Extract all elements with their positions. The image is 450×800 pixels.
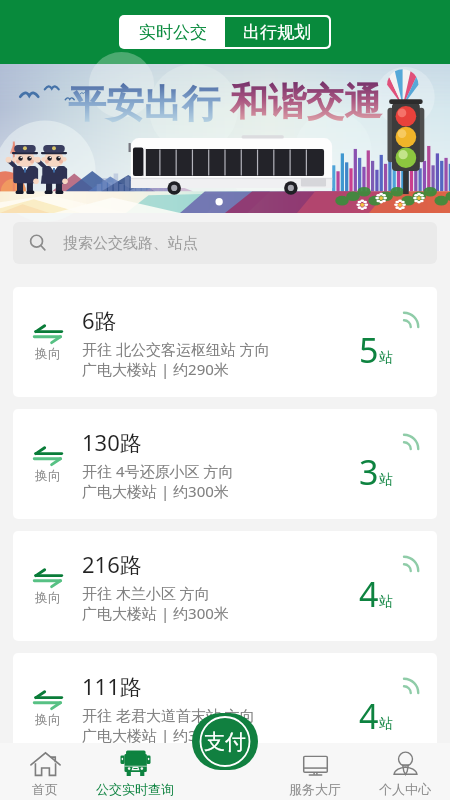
staticText: 换向: [35, 345, 61, 361]
staticText: 广电大楼站 | 约300米: [82, 603, 229, 623]
staticText: 111路: [82, 671, 142, 701]
button[interactable]: 换向: [13, 531, 437, 641]
staticText: 216路: [82, 549, 142, 579]
staticText: 平安出行: [68, 76, 230, 128]
staticText: 换向: [35, 589, 61, 605]
button[interactable]: 实时公交: [121, 17, 225, 47]
staticText: 站: [379, 349, 393, 367]
staticText: 搜索公交线路、站点: [63, 234, 198, 253]
staticText: 首页: [32, 781, 58, 797]
staticText: 开往 4号还原小区 方向: [82, 461, 234, 481]
staticText: 6路: [82, 305, 117, 335]
staticText: 广电大楼站 | 约290米: [82, 359, 229, 379]
button[interactable]: 支付: [192, 713, 258, 770]
staticText: 和谐交通: [230, 78, 382, 126]
staticText: 换向: [35, 711, 61, 727]
staticText: 130路: [82, 427, 142, 457]
staticText: 3: [359, 449, 379, 495]
button[interactable]: 搜索公交线路、站点: [13, 222, 437, 264]
button[interactable]: 个人中心: [360, 743, 450, 800]
staticText: 4: [359, 693, 379, 739]
staticText: 实时公交: [139, 22, 207, 43]
button[interactable]: 服务大厅: [270, 743, 360, 800]
button[interactable]: 公交实时查询: [90, 743, 180, 800]
staticText: 开往 北公交客运枢纽站 方向: [82, 339, 270, 359]
staticText: 开往 老君大道首末站 方向: [82, 705, 255, 725]
button[interactable]: 出行规划: [225, 17, 329, 47]
staticText: 出行规划: [243, 22, 311, 43]
staticText: 支付: [204, 729, 246, 755]
staticText: 公交实时查询: [96, 781, 174, 797]
staticText: 个人中心: [379, 781, 431, 797]
staticText: 广电大楼站 | 约300米: [82, 725, 229, 745]
staticText: 服务大厅: [289, 781, 341, 797]
button[interactable]: 换向: [13, 409, 437, 519]
button[interactable]: 首页: [0, 743, 90, 800]
staticText: 5: [359, 327, 379, 373]
staticText: 4: [359, 571, 379, 617]
staticText: 广电大楼站 | 约300米: [82, 481, 229, 501]
staticText: 站: [379, 593, 393, 611]
staticText: 站: [379, 471, 393, 489]
staticText: 开往 木兰小区 方向: [82, 583, 210, 603]
staticText: 站: [379, 715, 393, 733]
button[interactable]: 换向: [13, 287, 437, 397]
staticText: 换向: [35, 467, 61, 483]
button[interactable]: 换向: [13, 653, 437, 763]
